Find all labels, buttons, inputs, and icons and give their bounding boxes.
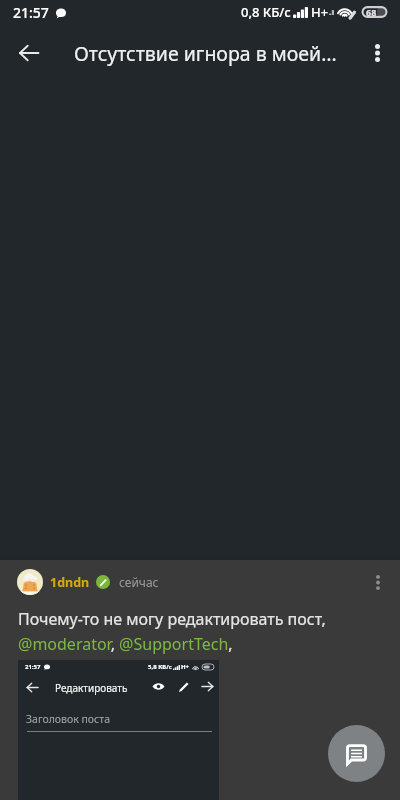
staticText: Отсутствие игнора в моей… xyxy=(74,40,337,67)
staticText: 1dndn xyxy=(50,574,90,591)
button[interactable]: Ещё xyxy=(365,569,391,595)
staticText: H+ xyxy=(311,3,329,21)
staticText: 68 xyxy=(366,6,377,18)
staticText: 21:57 xyxy=(13,3,49,22)
staticText: Заголовок поста xyxy=(26,712,110,726)
staticText: H+ xyxy=(181,663,190,671)
button[interactable]: Назад xyxy=(8,32,50,74)
staticText: 21:57 xyxy=(25,663,41,671)
staticText: Почему-то не могу редактировать пост, xyxy=(18,608,326,630)
staticText: 5,8 КБ/c xyxy=(148,663,172,671)
staticText: @moderator, @SupportTech, xyxy=(18,633,233,655)
button[interactable]: Комментарии xyxy=(328,725,385,782)
staticText: 0,8 КБ/c xyxy=(241,3,291,21)
staticText: Редактировать xyxy=(55,681,128,695)
button[interactable]: Меню xyxy=(356,32,398,74)
staticText: сейчас xyxy=(119,574,159,590)
